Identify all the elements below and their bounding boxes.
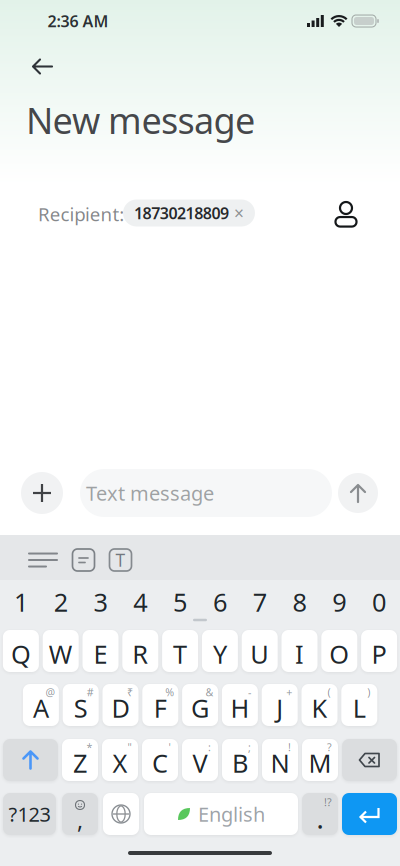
button[interactable]: X [102, 739, 138, 781]
button[interactable]: Send [338, 473, 378, 513]
button[interactable]: Z [62, 739, 98, 781]
button[interactable]: Return [342, 793, 397, 835]
staticText: Recipient: [38, 202, 124, 226]
button[interactable]: 7 [242, 582, 278, 622]
button[interactable]: Text editing [101, 540, 139, 579]
staticText: S [74, 691, 88, 725]
staticText: × [234, 201, 244, 224]
staticText: , [77, 805, 83, 835]
button[interactable]: Switch language [103, 793, 139, 835]
button[interactable]: I [281, 630, 317, 672]
button[interactable]: K [301, 684, 337, 726]
staticText: D [111, 691, 129, 725]
button[interactable]: S [63, 684, 99, 726]
staticText: T [173, 637, 187, 671]
staticText: ; [248, 740, 251, 754]
button[interactable]: A [23, 684, 59, 726]
staticText: K [311, 691, 327, 725]
button[interactable]: P [361, 630, 397, 672]
staticText: 18730218809 [134, 202, 229, 224]
staticText: 0 [372, 585, 386, 619]
button[interactable]: Comma [62, 793, 98, 835]
button[interactable]: Clipboard [20, 544, 66, 576]
staticText: Y [213, 637, 227, 671]
staticText: B [232, 746, 248, 780]
staticText: 7 [253, 585, 267, 619]
button[interactable]: 6 [202, 582, 238, 622]
button[interactable]: Remove recipient 18730218809 [123, 199, 255, 226]
button[interactable]: 9 [321, 582, 357, 622]
button[interactable]: B [222, 739, 258, 781]
staticText: O [329, 637, 349, 671]
staticText: ) [367, 685, 370, 699]
staticText: X [112, 746, 127, 780]
staticText: - [248, 685, 251, 699]
staticText: 8 [292, 585, 306, 619]
staticText: ! [288, 740, 291, 754]
staticText: ? [327, 740, 332, 754]
staticText: ?123 [8, 801, 50, 827]
staticText: M [308, 746, 331, 780]
button[interactable]: L [341, 684, 377, 726]
button[interactable]: Symbols [3, 793, 56, 835]
staticText: * [86, 740, 92, 754]
button[interactable]: Y [202, 630, 238, 672]
staticText: : [208, 740, 211, 754]
button[interactable]: Text message [80, 469, 332, 517]
button[interactable]: U [242, 630, 278, 672]
button[interactable]: D [102, 684, 138, 726]
button[interactable]: F [142, 684, 178, 726]
button[interactable]: 0 [361, 582, 397, 622]
button[interactable]: Shift [3, 739, 58, 781]
staticText: A [33, 691, 49, 725]
button[interactable]: R [122, 630, 158, 672]
staticText: J [276, 691, 283, 725]
staticText: U [250, 637, 269, 671]
button[interactable]: V [182, 739, 218, 781]
staticText: !? [324, 795, 332, 809]
staticText: + [286, 685, 292, 699]
button[interactable]: Space [144, 793, 298, 835]
staticText: P [372, 637, 387, 671]
staticText: 3 [93, 585, 107, 619]
button[interactable]: Templates [64, 541, 102, 579]
button[interactable]: Choose contact [326, 193, 366, 235]
button[interactable]: Period [302, 793, 338, 835]
button[interactable]: H [222, 684, 258, 726]
staticText: & [206, 685, 214, 699]
button[interactable]: C [142, 739, 178, 781]
button[interactable]: W [43, 630, 79, 672]
staticText: New message [26, 96, 255, 144]
staticText: % [165, 685, 174, 699]
staticText: " [127, 740, 131, 754]
staticText: 1 [14, 585, 28, 619]
button[interactable]: E [82, 630, 118, 672]
button[interactable]: J [262, 684, 298, 726]
staticText: 6 [213, 585, 227, 619]
button[interactable]: Back [19, 46, 65, 86]
staticText: G [191, 691, 209, 725]
button[interactable]: 4 [122, 582, 158, 622]
staticText: 4 [133, 585, 147, 619]
staticText: N [270, 746, 289, 780]
button[interactable]: G [182, 684, 218, 726]
button[interactable]: 1 [3, 582, 39, 622]
button[interactable]: Add attachment [21, 472, 63, 514]
staticText: . [317, 805, 323, 835]
button[interactable]: 8 [281, 582, 317, 622]
button[interactable]: N [262, 739, 298, 781]
button[interactable]: 5 [162, 582, 198, 622]
staticText: W [49, 637, 73, 671]
staticText: H [230, 691, 249, 725]
button[interactable]: Q [3, 630, 39, 672]
button[interactable]: M [302, 739, 338, 781]
button[interactable]: Delete [342, 739, 397, 781]
staticText: English [198, 801, 265, 827]
staticText: 9 [332, 585, 346, 619]
button[interactable]: O [321, 630, 357, 672]
staticText: Text message [86, 480, 214, 506]
button[interactable]: 3 [82, 582, 118, 622]
button[interactable]: 2 [43, 582, 79, 622]
button[interactable]: T [162, 630, 198, 672]
staticText: Q [11, 637, 31, 671]
